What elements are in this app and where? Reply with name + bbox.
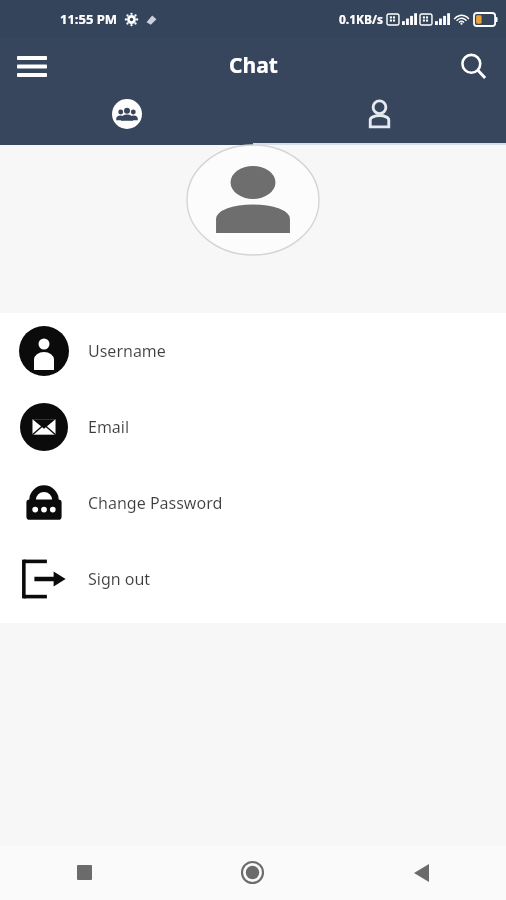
button[interactable]: Recent apps [0, 845, 168, 900]
staticText: Email [88, 416, 130, 438]
staticText: Sign out [88, 568, 151, 590]
button[interactable]: Change Password [0, 465, 506, 541]
staticText: Username [88, 340, 166, 362]
button[interactable]: Profile tab [253, 93, 506, 145]
button[interactable]: Open navigation menu [10, 44, 54, 88]
staticText: Change Password [88, 492, 223, 514]
button[interactable]: Username [0, 313, 506, 389]
staticText: 11:55 PM [60, 10, 118, 28]
button[interactable]: Sign out [0, 541, 506, 617]
button[interactable]: Profile photo [187, 145, 319, 255]
staticText: 0.1KB/s [339, 11, 384, 27]
button[interactable]: Groups tab [0, 93, 253, 145]
button[interactable]: Email [0, 389, 506, 465]
button[interactable]: Home [168, 845, 337, 900]
button[interactable]: Search [450, 43, 496, 89]
staticText: Chat [229, 51, 278, 80]
button[interactable]: Back [337, 845, 506, 900]
